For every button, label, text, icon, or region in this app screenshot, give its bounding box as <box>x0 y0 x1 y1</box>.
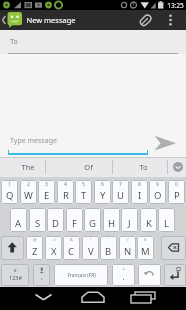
staticText: L <box>164 217 169 230</box>
staticText: A <box>15 217 22 230</box>
staticText: I <box>138 189 142 202</box>
button[interactable]: C <box>63 236 80 260</box>
staticText: R <box>63 189 69 202</box>
staticText: 6 <box>101 181 104 188</box>
button[interactable]: Z <box>26 236 43 260</box>
staticText: 0 <box>175 181 178 188</box>
staticText: 123# <box>9 274 22 281</box>
staticText: The <box>21 162 35 172</box>
staticText: Y <box>100 189 106 202</box>
staticText: · <box>74 209 76 214</box>
button[interactable]: T <box>75 180 92 204</box>
staticText: . <box>122 271 125 282</box>
staticText: F <box>72 217 77 230</box>
staticText: G <box>89 217 96 230</box>
button[interactable]: A <box>10 208 27 232</box>
button[interactable] <box>171 160 185 174</box>
staticText: C <box>68 245 75 258</box>
button[interactable] <box>161 236 186 260</box>
staticText: O <box>154 189 162 202</box>
button[interactable] <box>28 287 60 310</box>
staticText: V <box>88 245 94 258</box>
button[interactable]: S <box>29 208 46 232</box>
button[interactable]: P <box>168 180 185 204</box>
staticText: Of <box>84 162 93 172</box>
button[interactable]: Q <box>1 180 18 204</box>
button[interactable] <box>112 264 135 286</box>
staticText: , <box>41 272 43 282</box>
button[interactable]: N <box>119 236 136 260</box>
staticText: M <box>141 245 150 258</box>
button[interactable] <box>54 264 108 286</box>
staticText: $ <box>144 237 147 242</box>
staticText: Z <box>32 245 38 258</box>
staticText: · <box>92 209 94 214</box>
staticText: 4 <box>64 181 67 188</box>
button[interactable]: H <box>103 208 120 232</box>
button[interactable]: V <box>82 236 99 260</box>
button[interactable]: D <box>47 208 64 232</box>
button[interactable]: F <box>66 208 83 232</box>
button[interactable]: E <box>38 180 55 204</box>
staticText: · <box>55 209 57 214</box>
button[interactable]: W <box>20 180 37 204</box>
button[interactable] <box>77 287 109 310</box>
staticText: J <box>128 217 131 230</box>
staticText: To <box>139 162 148 172</box>
staticText: Français (FR) <box>67 272 96 279</box>
button[interactable]: U <box>112 180 129 204</box>
button[interactable]: K <box>140 208 157 232</box>
staticText: P <box>174 189 180 202</box>
button[interactable]: R <box>57 180 74 204</box>
staticText: U <box>117 189 124 202</box>
button[interactable]: M <box>137 236 154 260</box>
staticText: < <box>122 266 125 272</box>
button[interactable] <box>152 133 180 155</box>
staticText: :-) <box>52 237 56 242</box>
button[interactable] <box>164 264 186 286</box>
staticText: · <box>129 209 131 214</box>
button[interactable]: L <box>158 208 175 232</box>
button[interactable] <box>0 30 186 54</box>
staticText: N <box>124 245 132 258</box>
staticText: 2 <box>27 181 30 188</box>
staticText: ! <box>90 237 92 242</box>
staticText: & <box>70 237 73 242</box>
staticText: ' <box>108 237 109 242</box>
staticText: X <box>51 245 57 258</box>
button[interactable] <box>33 264 50 286</box>
staticText: · <box>18 209 20 214</box>
staticText: To <box>10 37 18 47</box>
staticText: S <box>35 217 41 230</box>
button[interactable]: B <box>100 236 117 260</box>
staticText: · <box>166 209 168 214</box>
button[interactable]: I <box>131 180 148 204</box>
staticText: 13:25 <box>167 1 184 10</box>
staticText: 5 <box>82 181 85 188</box>
staticText: New message <box>26 15 76 25</box>
button[interactable]: O <box>149 180 166 204</box>
button[interactable] <box>126 287 158 310</box>
staticText: Q <box>6 189 14 202</box>
button[interactable] <box>138 264 161 286</box>
button[interactable] <box>1 264 29 286</box>
staticText: B <box>105 245 112 258</box>
staticText: 9 <box>156 181 159 188</box>
staticText: 3 <box>45 181 48 188</box>
staticText: 8 <box>138 181 141 188</box>
staticText: 1 <box>8 181 11 188</box>
staticText: T <box>81 189 87 202</box>
staticText: W <box>24 189 33 202</box>
button[interactable]: J <box>121 208 138 232</box>
staticText: · <box>148 209 150 214</box>
button[interactable]: G <box>84 208 101 232</box>
staticText: E <box>44 189 50 202</box>
staticText: D <box>52 217 59 230</box>
button[interactable] <box>0 10 186 30</box>
button[interactable]: X <box>45 236 62 260</box>
button[interactable] <box>1 236 24 260</box>
staticText: H <box>108 217 116 230</box>
staticText: Type message <box>10 136 57 146</box>
button[interactable]: Y <box>94 180 111 204</box>
